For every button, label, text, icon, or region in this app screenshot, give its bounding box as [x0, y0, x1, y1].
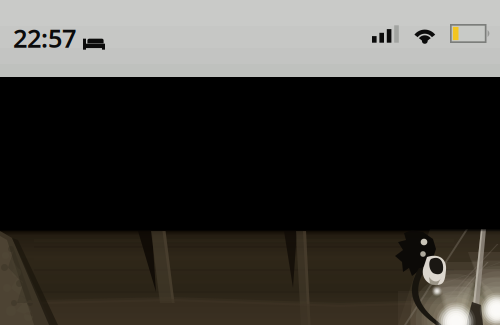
staticText: 22:57: [13, 21, 76, 55]
